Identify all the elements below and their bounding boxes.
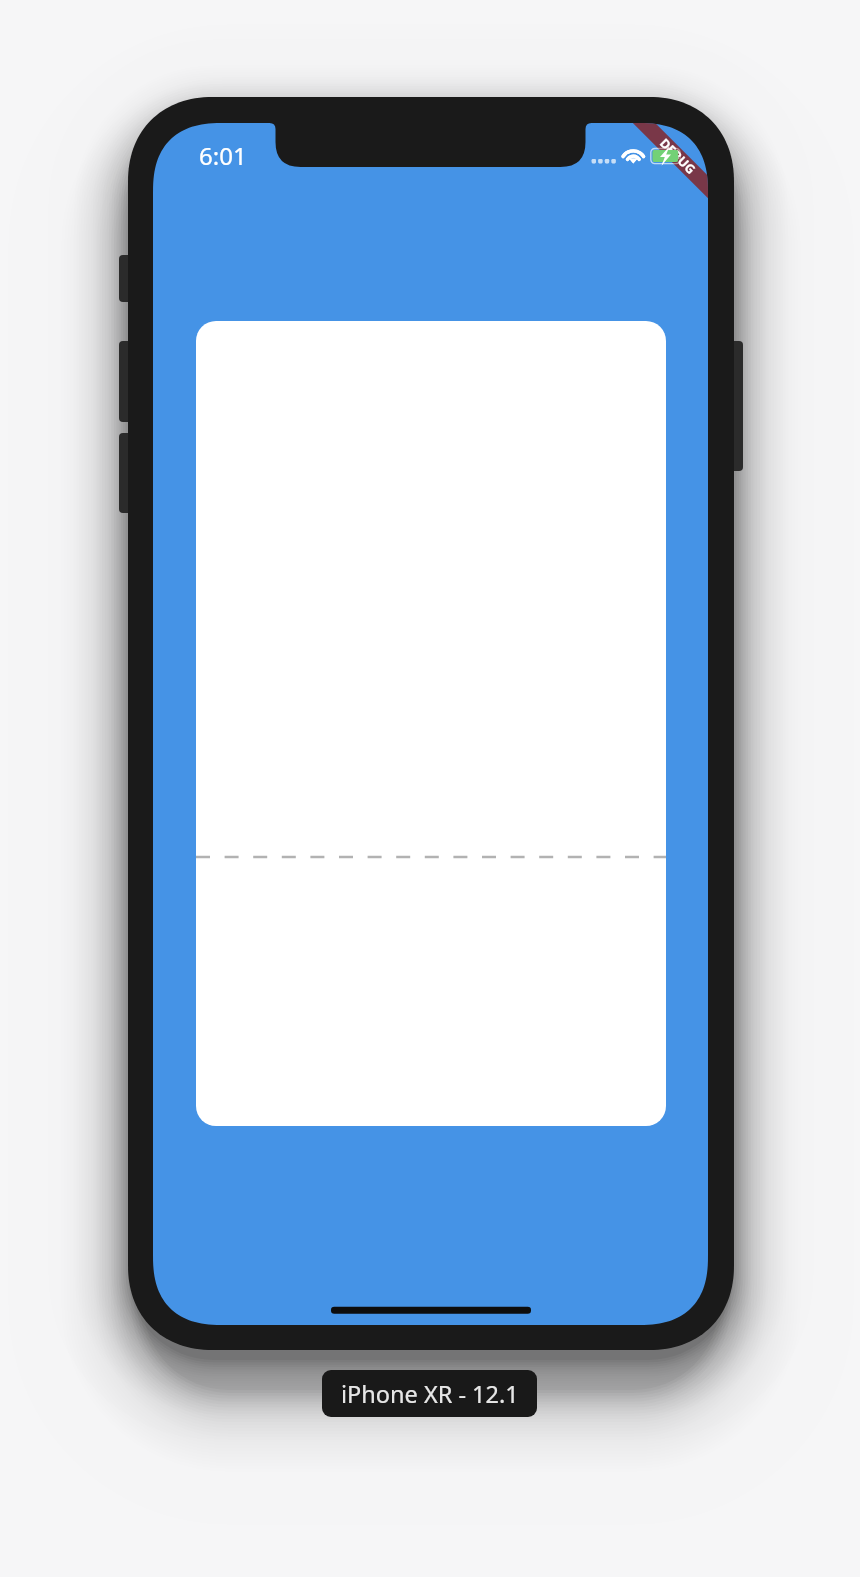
button[interactable]: Power bbox=[729, 341, 743, 471]
staticText: DEBUG bbox=[656, 135, 699, 178]
button[interactable]: Silent switch bbox=[119, 255, 133, 302]
staticText: 6:01 bbox=[199, 139, 247, 172]
button[interactable]: Volume up bbox=[119, 341, 133, 422]
button[interactable]: iPhone XR - 12.1 bbox=[322, 1370, 537, 1417]
button[interactable] bbox=[196, 321, 666, 1126]
button[interactable]: Home indicator bbox=[331, 1300, 531, 1320]
staticText: iPhone XR - 12.1 bbox=[341, 1378, 519, 1410]
button[interactable]: Volume down bbox=[119, 433, 133, 513]
